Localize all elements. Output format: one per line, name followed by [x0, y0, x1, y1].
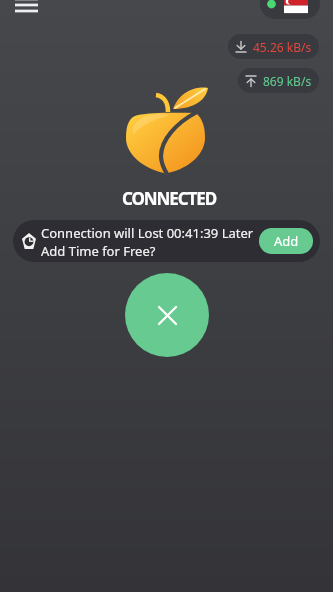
button[interactable]: 45.26 kB/s — [228, 34, 319, 59]
staticText: 45.26 kB/s — [253, 39, 312, 55]
staticText: Add — [274, 232, 299, 250]
button[interactable]: Select country — [260, 0, 320, 19]
staticText: 869 kB/s — [263, 73, 312, 89]
staticText: CONNECTED — [122, 187, 216, 210]
button[interactable]: Connection will Lost 00:41:39 Later — [13, 220, 320, 262]
staticText: Add Time for Free? — [41, 242, 156, 260]
button[interactable]: Add — [259, 228, 313, 254]
button[interactable]: Menu — [10, 0, 44, 27]
button[interactable]: 869 kB/s — [238, 68, 319, 93]
button[interactable]: Disconnect — [125, 273, 209, 357]
staticText: Connection will Lost 00:41:39 Later — [41, 224, 254, 242]
